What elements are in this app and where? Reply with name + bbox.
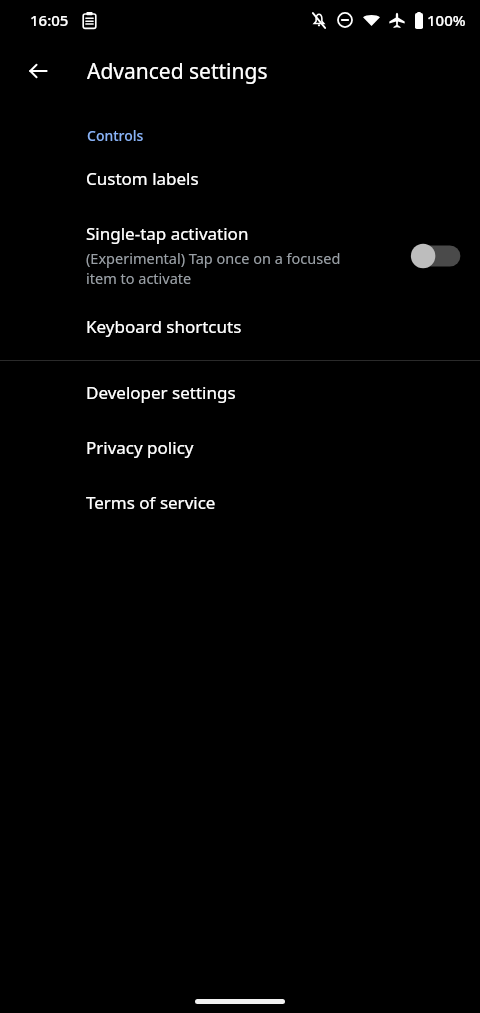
button[interactable]: Single-tap activation toggle xyxy=(408,239,462,273)
staticText: Developer settings xyxy=(86,381,236,404)
staticText: Single-tap activation xyxy=(86,222,249,245)
staticText: Terms of service xyxy=(86,491,216,514)
staticText: 16:05 xyxy=(30,10,69,30)
button[interactable]: Privacy policy xyxy=(0,424,480,479)
staticText: Privacy policy xyxy=(86,436,194,459)
staticText: Advanced settings xyxy=(87,57,268,86)
staticText: Keyboard shortcuts xyxy=(86,315,242,338)
staticText: Controls xyxy=(87,126,144,145)
staticText: (Experimental) Tap once on a focused ite… xyxy=(86,248,341,289)
button[interactable]: Back xyxy=(14,47,62,95)
button[interactable]: Developer settings xyxy=(0,361,480,424)
button[interactable]: Terms of service xyxy=(0,479,480,534)
staticText: 100% xyxy=(427,10,466,30)
button[interactable]: Keyboard shortcuts xyxy=(0,299,480,360)
button[interactable]: Custom labels xyxy=(0,147,480,210)
staticText: Custom labels xyxy=(86,167,199,190)
button[interactable]: Single-tap activation xyxy=(0,210,480,299)
